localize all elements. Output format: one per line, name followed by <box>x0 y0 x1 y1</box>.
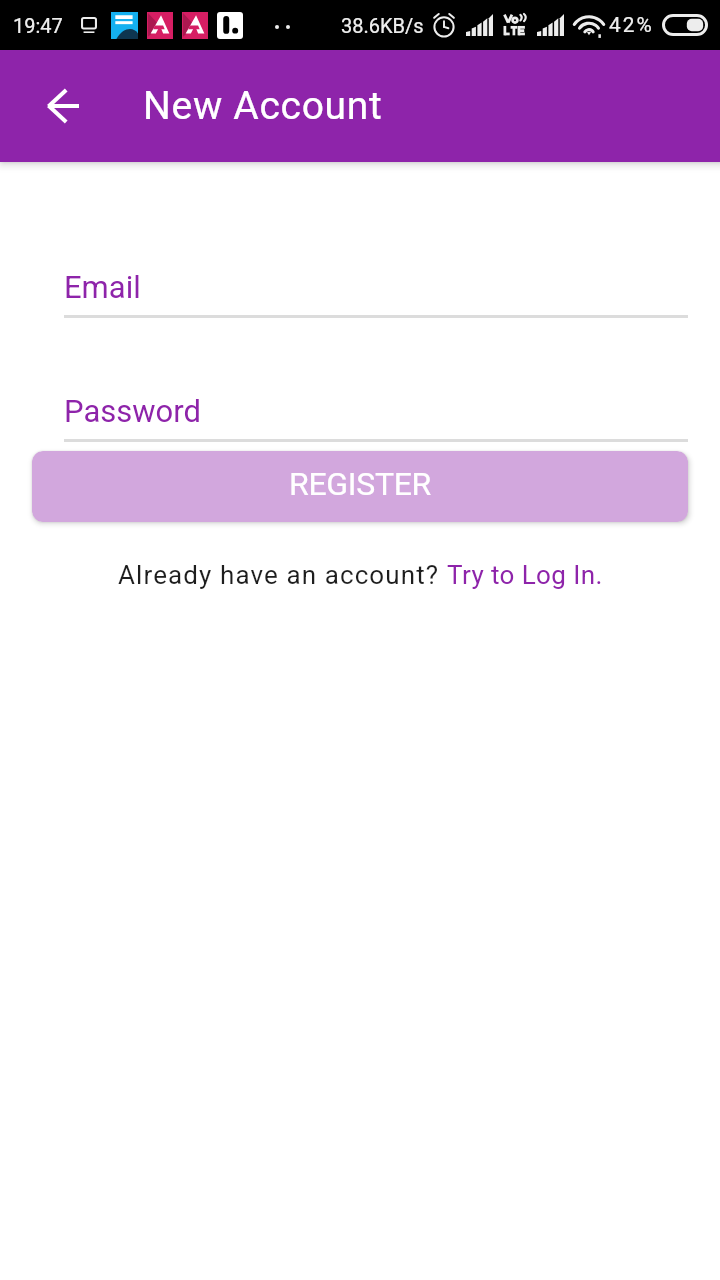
staticText: REGISTER <box>289 465 432 503</box>
staticText: 19:47 <box>13 14 63 37</box>
button[interactable]: Email <box>0 269 720 318</box>
staticText: 42% <box>609 13 654 37</box>
staticText: Password <box>64 393 201 429</box>
staticText: New Account <box>143 83 383 129</box>
button[interactable]: REGISTER <box>32 451 688 522</box>
staticText: Already have an account? <box>118 560 447 590</box>
button[interactable]: Navigate back <box>30 73 96 139</box>
button[interactable]: Password <box>0 393 720 442</box>
button[interactable]: Try to Log In. <box>447 560 603 590</box>
staticText: 38.6KB/s <box>341 14 424 37</box>
staticText: Email <box>64 269 141 305</box>
